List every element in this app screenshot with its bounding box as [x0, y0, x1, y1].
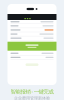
- staticText: 企业费用管理新体验: [14, 96, 50, 101]
- staticText: 智能报销 · 一键完成: [10, 88, 53, 95]
